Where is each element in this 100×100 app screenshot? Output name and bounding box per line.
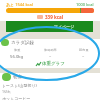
staticText: 体重グラフ [42, 61, 65, 67]
staticText: 朝食 [13, 74, 22, 80]
staticText: マイページ [54, 24, 75, 29]
staticText: 体重 [14, 48, 21, 52]
staticText: － [81, 54, 86, 59]
staticText: － [48, 54, 53, 59]
staticText: 筋肉量 [79, 48, 89, 52]
staticText: あと 1544 kcal [6, 2, 33, 7]
staticText: 体脂肪率 [44, 48, 57, 52]
staticText: ホットコーヒー [2, 96, 31, 100]
staticText: 56.0kg [10, 54, 24, 60]
staticText: 1切れ [2, 89, 12, 94]
staticText: 339 kcal [45, 14, 64, 20]
staticText: カラダ記録 [11, 40, 34, 46]
staticText: 1000 kcal [76, 2, 94, 7]
staticText: トースト(山型切り) [2, 83, 37, 88]
